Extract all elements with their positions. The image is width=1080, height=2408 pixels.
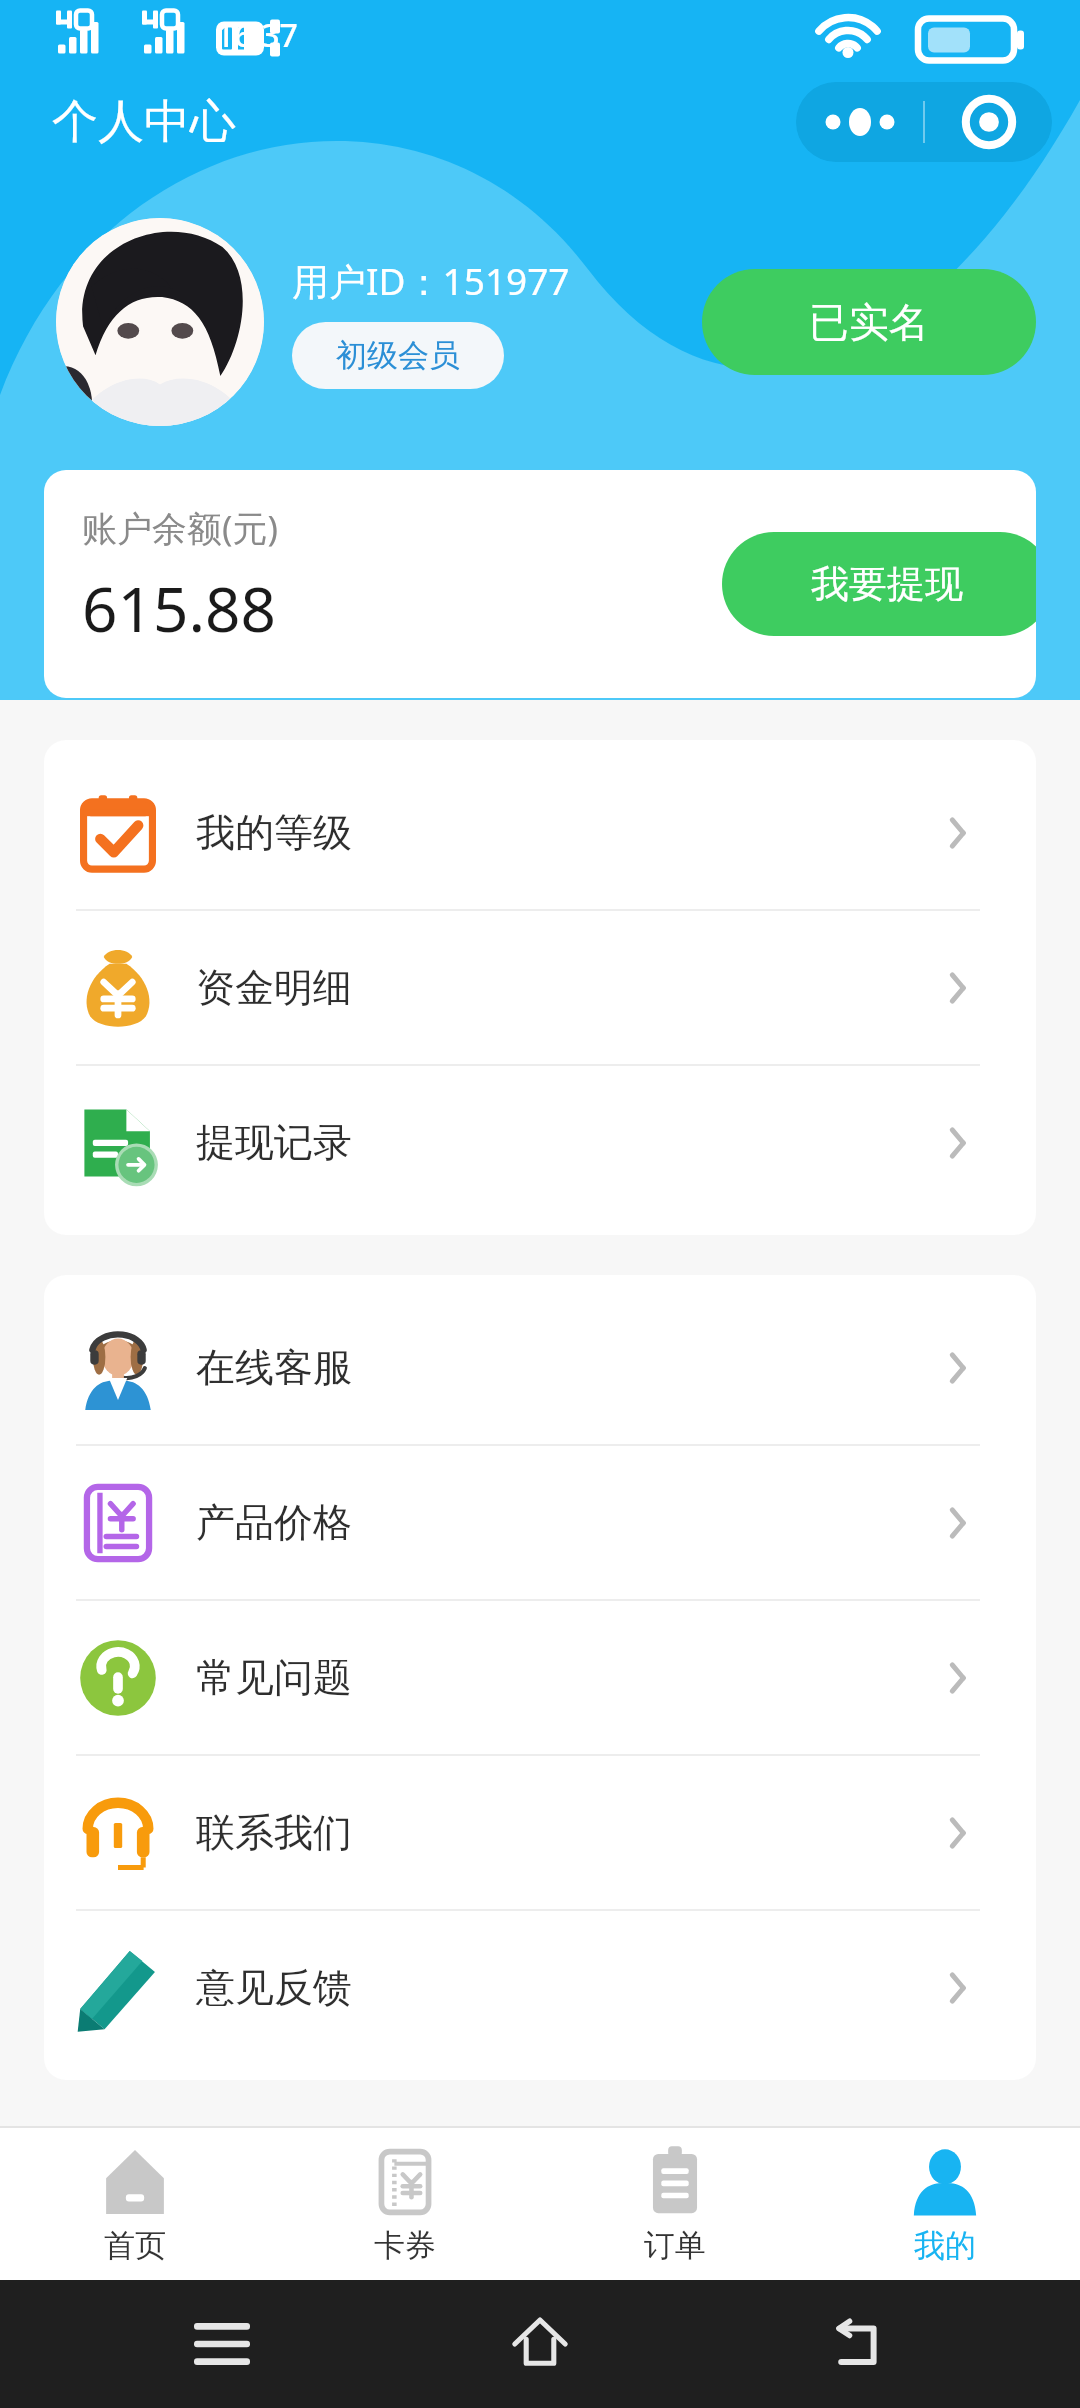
button[interactable]: 提现记录 [44, 1066, 1036, 1219]
staticText: 在线客服 [196, 1343, 352, 1392]
staticText: 常见问题 [196, 1653, 352, 1702]
staticText: 提现记录 [196, 1118, 352, 1167]
staticText: 初级会员 [336, 336, 460, 375]
staticText: 615.88 [82, 566, 276, 650]
staticText: 我的等级 [196, 808, 352, 857]
button[interactable]: Floating home button [925, 82, 1052, 162]
button[interactable]: 在线客服 [44, 1291, 1036, 1444]
staticText: 我要提现 [811, 560, 963, 608]
staticText: 产品价格 [196, 1498, 352, 1547]
button[interactable]: 订单 [540, 2128, 810, 2280]
button[interactable]: 产品价格 [44, 1446, 1036, 1599]
button[interactable]: 常见问题 [44, 1601, 1036, 1754]
button[interactable]: 我的等级 [44, 756, 1036, 909]
button[interactable]: Home [434, 2280, 646, 2408]
button[interactable]: More options [796, 82, 923, 162]
button[interactable]: Profile photo [56, 218, 264, 426]
staticText: 订单 [644, 2226, 706, 2265]
staticText: 首页 [104, 2226, 166, 2265]
button[interactable]: Recent apps [116, 2280, 328, 2408]
button[interactable]: 我的 [810, 2128, 1080, 2280]
button[interactable]: 联系我们 [44, 1756, 1036, 1909]
button[interactable]: 已实名 [702, 269, 1036, 375]
button[interactable]: 初级会员 [292, 322, 504, 389]
button[interactable]: 意见反馈 [44, 1911, 1036, 2064]
staticText: 我的 [914, 2226, 976, 2265]
button[interactable]: 卡券 [270, 2128, 540, 2280]
staticText: 卡券 [374, 2226, 436, 2265]
button[interactable]: 我要提现 [722, 532, 1036, 636]
staticText: 联系我们 [196, 1808, 352, 1857]
button[interactable]: Back [752, 2280, 964, 2408]
staticText: 账户余额(元) [82, 504, 279, 552]
staticText: 资金明细 [196, 963, 352, 1012]
button[interactable]: 首页 [0, 2128, 270, 2280]
staticText: 意见反馈 [196, 1963, 352, 2012]
staticText: 用户ID：151977 [292, 255, 570, 306]
button[interactable]: 资金明细 [44, 911, 1036, 1064]
staticText: 个人中心 [52, 93, 236, 151]
staticText: 已实名 [809, 297, 929, 347]
staticText: 16:37 [216, 13, 298, 57]
